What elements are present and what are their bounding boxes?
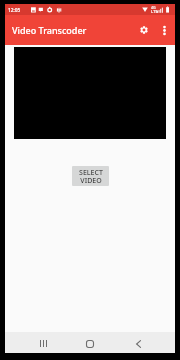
staticText: 12:05	[8, 7, 21, 14]
staticText: SELECT VIDEO	[79, 168, 103, 185]
staticText: 4G	[151, 5, 156, 10]
button[interactable]: More options	[154, 15, 175, 45]
staticText: LTE	[151, 9, 158, 15]
button[interactable]: Settings	[133, 15, 154, 45]
button[interactable]: SELECT VIDEO	[72, 166, 109, 186]
button[interactable]: Back	[121, 333, 155, 354]
button[interactable]: Home	[73, 333, 107, 354]
staticText: Video Transcoder	[12, 24, 87, 36]
button[interactable]: Recent apps	[26, 333, 60, 354]
